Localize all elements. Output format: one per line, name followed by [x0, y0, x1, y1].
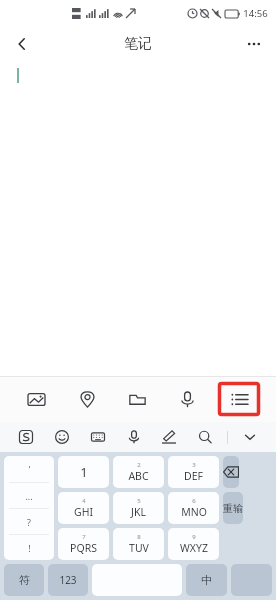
button[interactable]: Files: [117, 382, 157, 416]
button[interactable]: 6: [168, 492, 219, 524]
staticText: 5: [137, 497, 141, 505]
button[interactable]: Hide keyboard: [236, 423, 264, 451]
button[interactable]: 7: [58, 528, 109, 560]
button[interactable]: !: [4, 535, 54, 560]
button[interactable]: [231, 564, 272, 596]
staticText: JKL: [131, 505, 146, 519]
button[interactable]: Search: [191, 423, 219, 451]
staticText: ABC: [128, 469, 149, 483]
button[interactable]: More options: [236, 26, 272, 62]
button[interactable]: 5: [113, 492, 164, 524]
button[interactable]: Emoji: [48, 423, 76, 451]
button[interactable]: 4: [58, 492, 109, 524]
staticText: ': [28, 463, 31, 475]
button[interactable]: Handwriting: [155, 423, 183, 451]
button[interactable]: Keyboard layout: [84, 423, 112, 451]
staticText: TUV: [129, 541, 149, 555]
button[interactable]: 2: [113, 456, 164, 488]
staticText: 3: [192, 461, 196, 469]
staticText: 8: [137, 533, 141, 541]
staticText: WXYZ: [180, 541, 208, 555]
button[interactable]: ?: [4, 509, 54, 534]
button[interactable]: 9: [168, 528, 219, 560]
staticText: 6: [192, 497, 196, 505]
button[interactable]: Insert image: [16, 382, 56, 416]
staticText: 7: [82, 533, 86, 541]
button[interactable]: Back: [4, 26, 40, 62]
staticText: ...: [25, 490, 33, 502]
staticText: 重输: [223, 502, 243, 515]
button[interactable]: Backspace: [223, 456, 239, 488]
staticText: !: [28, 542, 31, 554]
button[interactable]: Location: [67, 382, 107, 416]
staticText: 2: [137, 461, 141, 469]
button[interactable]: Sogou input: [12, 423, 40, 451]
staticText: 中: [201, 573, 212, 587]
staticText: DEF: [184, 469, 203, 483]
staticText: 123: [59, 573, 77, 587]
staticText: 笔记: [124, 35, 152, 53]
button[interactable]: 123: [48, 564, 88, 596]
button[interactable]: 3: [168, 456, 219, 488]
button[interactable]: ': [4, 456, 54, 482]
staticText: ?: [27, 516, 31, 528]
button[interactable]: 重输: [223, 492, 243, 524]
staticText: GHI: [74, 505, 93, 519]
staticText: MNO: [181, 505, 207, 519]
staticText: 14:56: [243, 7, 268, 20]
button[interactable]: Voice input: [167, 382, 207, 416]
staticText: 1: [80, 463, 88, 481]
button[interactable]: 1: [58, 456, 109, 488]
button[interactable]: 中: [186, 564, 227, 596]
button[interactable]: ...: [4, 483, 54, 508]
button[interactable]: Voice: [120, 423, 148, 451]
staticText: 符: [19, 573, 30, 587]
staticText: PQRS: [70, 541, 97, 555]
staticText: 9: [192, 533, 196, 541]
button[interactable]: Space: [92, 564, 182, 596]
staticText: 4: [82, 497, 86, 505]
button[interactable]: 8: [113, 528, 164, 560]
button[interactable]: Checklist: [218, 382, 260, 416]
button[interactable]: 符: [4, 564, 44, 596]
